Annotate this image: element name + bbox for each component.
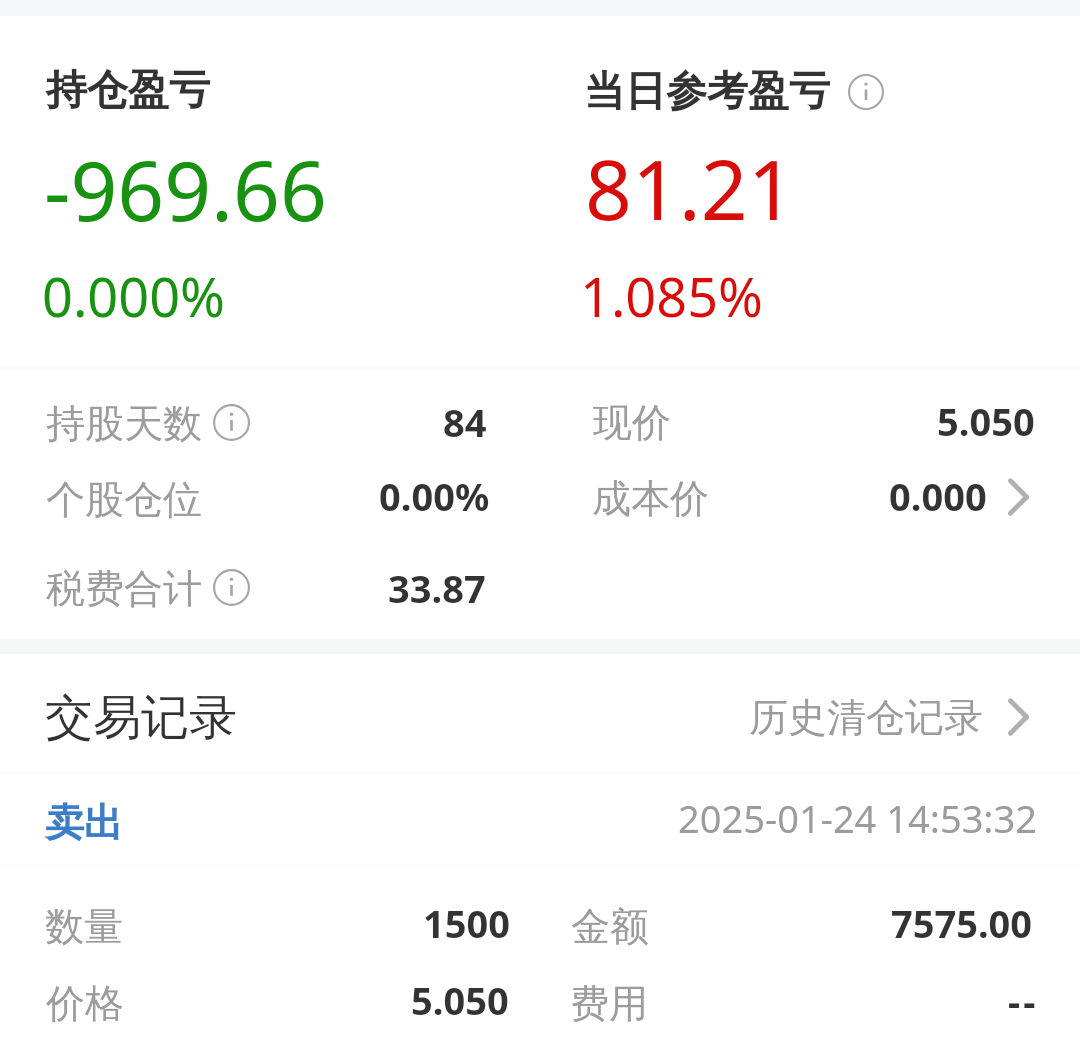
button[interactable]: 个股仓位 0.00%: [0, 460, 540, 536]
button[interactable]: 成本价 0.000: [540, 460, 1080, 536]
staticText: 7575.00: [891, 897, 1033, 949]
button[interactable]: 持仓盈亏: [0, 16, 540, 368]
staticText: 0.000: [889, 470, 987, 522]
staticText: 数量: [45, 902, 123, 951]
staticText: 持仓盈亏: [46, 65, 210, 117]
staticText: 现价: [593, 398, 671, 447]
staticText: 卖出: [45, 798, 123, 847]
staticText: 个股仓位: [46, 475, 202, 524]
staticText: 费用: [570, 979, 648, 1028]
staticText: 价格: [46, 979, 124, 1028]
button[interactable]: 持股天数 84: [0, 384, 540, 460]
staticText: 历史清仓记录: [749, 693, 983, 742]
button[interactable]: 卖出 2025-01-24 14:53:32: [0, 774, 1080, 1051]
staticText: 0.00%: [379, 470, 490, 522]
staticText: 84: [443, 396, 487, 448]
button[interactable]: 当日参考盈亏: [540, 16, 1080, 368]
staticText: 5.050: [937, 395, 1035, 447]
staticText: 5.050: [411, 974, 509, 1026]
staticText: 当日参考盈亏: [584, 66, 830, 118]
staticText: -969.66: [44, 133, 327, 245]
button[interactable]: 交易记录: [0, 654, 420, 773]
staticText: 81.21: [585, 132, 795, 244]
staticText: 金额: [571, 902, 649, 951]
staticText: 交易记录: [45, 688, 237, 748]
staticText: 1500: [423, 897, 510, 949]
staticText: 税费合计: [46, 564, 202, 613]
staticText: --: [1008, 975, 1039, 1027]
staticText: 0.000%: [42, 259, 225, 333]
staticText: 1.085%: [580, 259, 763, 333]
staticText: 持股天数: [46, 399, 202, 448]
button[interactable]: 历史清仓记录: [700, 654, 1080, 773]
staticText: 33.87: [388, 562, 486, 614]
button[interactable]: 现价 5.050: [540, 384, 1080, 460]
button[interactable]: 税费合计 33.87: [0, 549, 540, 625]
staticText: 2025-01-24 14:53:32: [678, 792, 1038, 844]
staticText: 成本价: [592, 474, 709, 523]
